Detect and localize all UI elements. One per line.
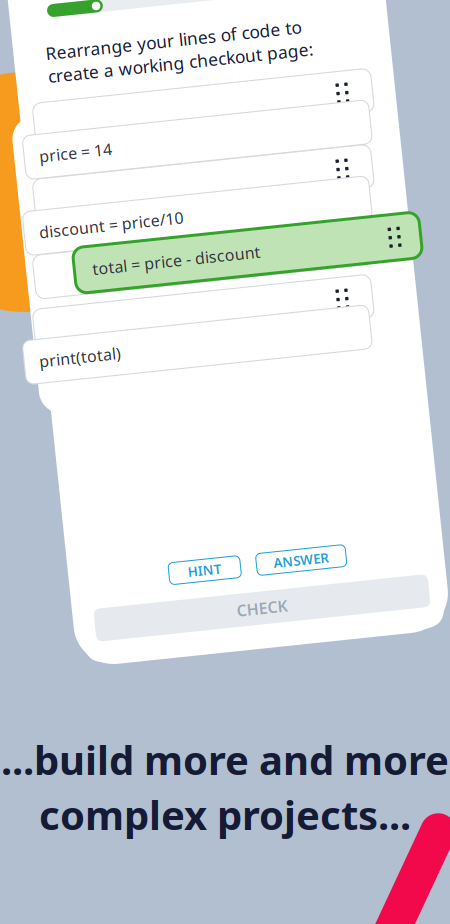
staticText: Rearrange your lines of code to create a… <box>69 24 336 70</box>
staticText: price = 14 <box>38 129 111 150</box>
staticText: CHECK <box>234 597 285 619</box>
staticText: print(total) <box>38 334 120 355</box>
staticText: complex projects... <box>39 788 411 841</box>
staticText: ANSWER <box>276 556 332 573</box>
button[interactable]: CHECK <box>92 591 428 624</box>
staticText: total = price - discount <box>91 242 260 263</box>
button[interactable]: HINT <box>171 553 243 575</box>
button[interactable]: ANSWER <box>259 553 349 575</box>
staticText: ...build more and more <box>1 733 449 786</box>
staticText: discount = price/10 <box>38 205 183 226</box>
staticText: HINT <box>190 556 224 573</box>
